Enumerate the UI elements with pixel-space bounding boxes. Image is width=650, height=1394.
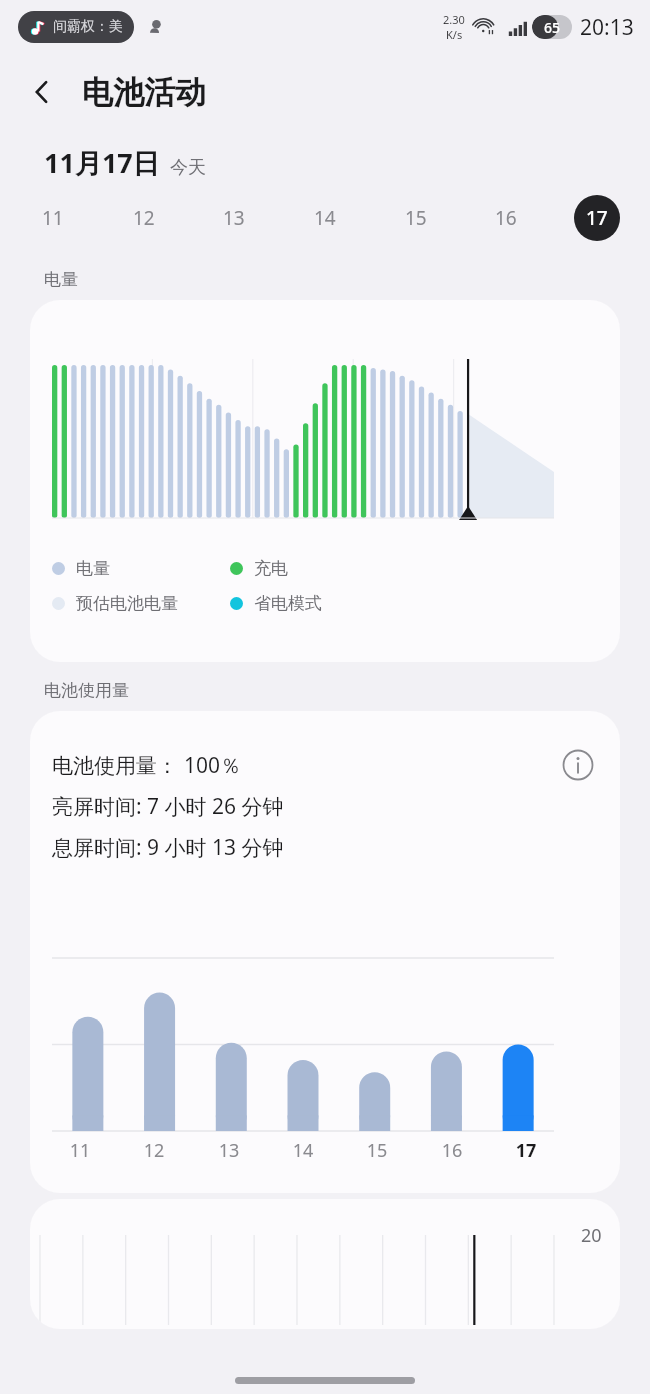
staticText: 电池活动 bbox=[82, 73, 206, 112]
staticText: 15 bbox=[349, 1138, 405, 1163]
button[interactable]: 电池使用量： bbox=[30, 711, 620, 1193]
button[interactable]: 12 bbox=[121, 195, 167, 241]
staticText: 17 bbox=[586, 205, 608, 231]
staticText: 今天 bbox=[170, 156, 206, 179]
staticText: 16 bbox=[424, 1138, 480, 1163]
staticText: 13 bbox=[223, 205, 245, 231]
staticText: 11 bbox=[52, 1138, 108, 1163]
staticText: 亮屏时间: 7 小时 26 分钟 bbox=[52, 792, 284, 821]
staticText: 14 bbox=[275, 1138, 331, 1163]
staticText: 15 bbox=[405, 205, 427, 231]
staticText: 11月17日 bbox=[44, 144, 160, 181]
staticText: 充电 bbox=[254, 558, 288, 579]
button[interactable]: 电量 bbox=[30, 300, 620, 662]
button[interactable]: 15 bbox=[393, 195, 439, 241]
button[interactable]: 11 bbox=[30, 195, 76, 241]
button[interactable]: 13 bbox=[211, 195, 257, 241]
staticText: 16 bbox=[495, 205, 517, 231]
button[interactable]: 20 bbox=[30, 1199, 620, 1329]
staticText: 电量 bbox=[44, 269, 78, 290]
staticText: 电池使用量： bbox=[52, 753, 178, 779]
staticText: 14 bbox=[314, 205, 336, 231]
staticText: 预估电池电量 bbox=[76, 593, 178, 614]
button[interactable]: 返回 bbox=[14, 64, 70, 120]
staticText: 12 bbox=[133, 205, 155, 231]
staticText: 20 bbox=[581, 1223, 602, 1248]
staticText: 息屏时间: 9 小时 13 分钟 bbox=[52, 833, 284, 862]
staticText: 电量 bbox=[76, 558, 110, 579]
button[interactable]: 信息 bbox=[556, 743, 600, 787]
button[interactable]: 16 bbox=[483, 195, 529, 241]
staticText: 65 bbox=[544, 18, 561, 37]
staticText: 电池使用量 bbox=[44, 680, 129, 701]
staticText: 13 bbox=[201, 1138, 257, 1163]
staticText: 100％ bbox=[184, 751, 242, 780]
staticText: K/s bbox=[446, 27, 463, 42]
staticText: 省电模式 bbox=[254, 593, 322, 614]
staticText: 间霸权：美 bbox=[53, 18, 123, 36]
staticText: 12 bbox=[126, 1138, 182, 1163]
staticText: 17 bbox=[498, 1138, 554, 1163]
staticText: 11 bbox=[42, 205, 64, 231]
button[interactable]: 17 bbox=[574, 195, 620, 241]
button[interactable]: 14 bbox=[302, 195, 348, 241]
staticText: 2.30 bbox=[443, 12, 465, 27]
button[interactable]: 通知 bbox=[29, 11, 123, 43]
staticText: 20:13 bbox=[580, 13, 634, 42]
